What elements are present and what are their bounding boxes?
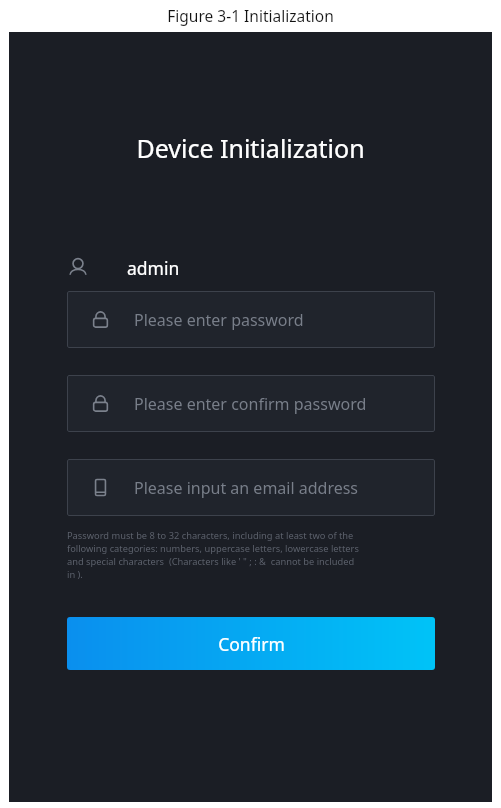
staticText: Figure 3-1 Initialization — [167, 5, 334, 26]
staticText: Device Initialization — [136, 131, 365, 165]
other: Password — [91, 394, 110, 413]
staticText: admin — [127, 256, 180, 280]
other: User account — [67, 257, 89, 279]
other: Email address — [91, 478, 110, 497]
staticText: in ). — [67, 568, 83, 581]
button[interactable]: Password — [67, 291, 435, 348]
button[interactable]: Email address — [67, 459, 435, 516]
button[interactable]: Password — [67, 375, 435, 432]
staticText: Confirm — [218, 632, 285, 656]
staticText: Password must be 8 to 32 characters, inc… — [67, 529, 354, 542]
staticText: Please input an email address — [134, 477, 359, 499]
staticText: Please enter password — [134, 309, 304, 331]
button[interactable]: User account — [67, 250, 180, 286]
staticText: following categories: numbers, uppercase… — [67, 542, 359, 555]
staticText: and special characters (Characters like … — [67, 555, 355, 568]
button[interactable]: Confirm — [67, 617, 435, 670]
other: Password — [91, 310, 110, 329]
staticText: Please enter confirm password — [134, 393, 367, 415]
